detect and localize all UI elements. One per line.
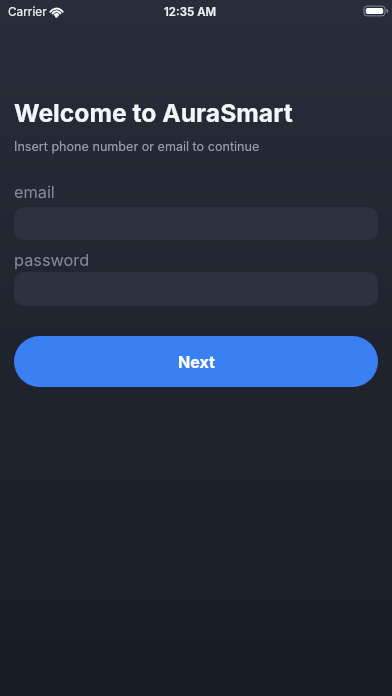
staticText: 12:35 AM xyxy=(164,5,217,19)
staticText: Insert phone number or email to continue xyxy=(14,139,260,154)
staticText: email xyxy=(14,182,55,202)
button[interactable]: Next xyxy=(14,336,378,387)
staticText: Carrier xyxy=(8,5,47,19)
staticText: password xyxy=(14,250,90,270)
staticText: Welcome to AuraSmart xyxy=(14,98,293,128)
staticText: Next xyxy=(178,352,215,371)
